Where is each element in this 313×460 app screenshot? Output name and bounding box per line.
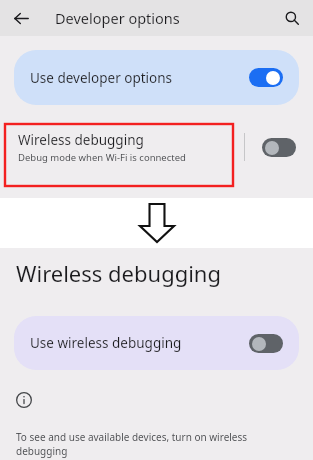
button[interactable]: Use developer options: [14, 50, 299, 105]
button[interactable]: Wireless debugging: [0, 122, 313, 172]
button[interactable]: Search: [279, 5, 305, 31]
staticText: Debug mode when Wi-Fi is connected: [18, 151, 186, 164]
staticText: To see and use available devices, turn o…: [16, 430, 248, 458]
button[interactable]: Use wireless debugging: [14, 316, 299, 370]
button[interactable]: Toggle wireless debugging: [245, 122, 313, 172]
staticText: Developer options: [55, 8, 180, 28]
staticText: Wireless debugging: [18, 131, 144, 149]
button[interactable]: Back: [8, 5, 34, 31]
staticText: Use wireless debugging: [30, 334, 249, 352]
staticText: Wireless debugging: [16, 258, 221, 288]
staticText: Use developer options: [30, 69, 249, 87]
